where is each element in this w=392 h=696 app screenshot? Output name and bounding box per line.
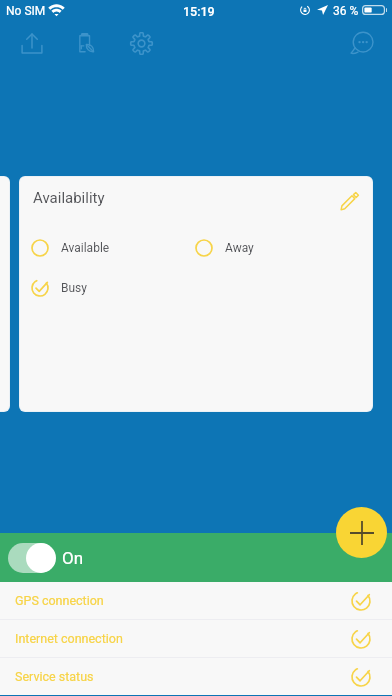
staticText: Away [225,241,254,255]
staticText: On [62,548,84,568]
button[interactable]: On [0,533,392,582]
button[interactable]: Upload [10,21,54,65]
staticText: No SIM [6,4,46,18]
button[interactable]: Availability [20,177,372,411]
button[interactable]: Settings [119,21,163,65]
button[interactable]: Add [336,507,387,558]
staticText: Availability [33,189,105,207]
staticText: GPS connection [15,593,104,608]
button[interactable]: Available [31,235,181,261]
staticText: Service status [15,669,94,684]
button[interactable]: Chat [339,21,383,65]
button[interactable]: Battery saver [64,21,108,65]
staticText: Busy [61,281,87,295]
staticText: 36 % [333,4,359,18]
button[interactable]: Busy [31,275,181,301]
button[interactable]: Service status [0,658,392,695]
staticText: Internet connection [15,631,123,646]
button[interactable]: Away [195,235,345,261]
button[interactable]: Internet connection [0,620,392,657]
staticText: 15:19 [183,4,215,19]
staticText: Available [61,241,110,255]
button[interactable]: GPS connection [0,582,392,619]
button[interactable]: Edit [331,183,367,219]
